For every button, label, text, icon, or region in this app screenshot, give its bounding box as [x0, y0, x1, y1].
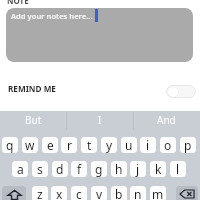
button[interactable]: j [130, 161, 146, 177]
staticText: And [157, 113, 176, 127]
button[interactable]: s [32, 161, 48, 177]
button[interactable]: e [42, 137, 58, 153]
staticText: j [136, 161, 140, 177]
staticText: u [125, 137, 133, 153]
staticText: NOTE [7, 0, 29, 6]
button[interactable]: r [61, 137, 77, 153]
button[interactable]: a [12, 161, 28, 177]
staticText: o [164, 137, 172, 153]
button[interactable]: Backspace [176, 186, 198, 200]
button[interactable]: l [170, 161, 186, 177]
button[interactable]: u [121, 137, 137, 153]
staticText: h [115, 161, 123, 177]
staticText: I [98, 113, 102, 127]
button[interactable]: w [22, 137, 38, 153]
button[interactable]: i [140, 137, 156, 153]
button[interactable]: n [130, 186, 146, 200]
button[interactable]: p [180, 137, 196, 153]
staticText: x [56, 186, 63, 200]
button[interactable]: d [52, 161, 68, 177]
button[interactable]: h [111, 161, 127, 177]
button[interactable]: Shift [2, 186, 26, 200]
staticText: t [87, 137, 92, 153]
button[interactable]: f [71, 161, 87, 177]
staticText: y [106, 137, 113, 153]
staticText: q [6, 137, 14, 153]
staticText: a [17, 161, 24, 177]
button[interactable]: o [160, 137, 176, 153]
button[interactable]: k [150, 161, 166, 177]
staticText: r [67, 137, 72, 153]
staticText: p [184, 137, 192, 153]
button[interactable]: y [101, 137, 117, 153]
staticText: f [77, 161, 82, 177]
button[interactable]: b [111, 186, 127, 200]
staticText: d [56, 161, 64, 177]
staticText: b [115, 186, 123, 200]
staticText: v [96, 186, 103, 200]
staticText: m [152, 186, 164, 200]
button[interactable]: z [32, 186, 48, 200]
staticText: n [134, 186, 142, 200]
button[interactable]: m [150, 186, 166, 200]
button[interactable]: And [133, 111, 200, 134]
staticText: Add your notes here... [11, 11, 93, 21]
button[interactable]: t [81, 137, 97, 153]
staticText: k [155, 161, 162, 177]
button[interactable]: Remind me toggle [166, 85, 196, 98]
button[interactable]: But [0, 111, 66, 134]
staticText: l [176, 161, 180, 177]
button[interactable]: Add your notes here... [6, 8, 193, 62]
button[interactable]: I [66, 111, 133, 134]
staticText: z [37, 186, 43, 200]
button[interactable]: c [71, 186, 87, 200]
staticText: c [76, 186, 82, 200]
staticText: e [47, 137, 54, 153]
button[interactable]: v [91, 186, 107, 200]
staticText: g [95, 161, 103, 177]
staticText: REMIND ME [8, 83, 56, 94]
button[interactable]: g [91, 161, 107, 177]
button[interactable]: x [51, 186, 67, 200]
button[interactable]: q [2, 137, 18, 153]
staticText: But [25, 113, 42, 127]
staticText: s [37, 161, 43, 177]
staticText: i [146, 137, 150, 153]
staticText: w [25, 137, 35, 153]
